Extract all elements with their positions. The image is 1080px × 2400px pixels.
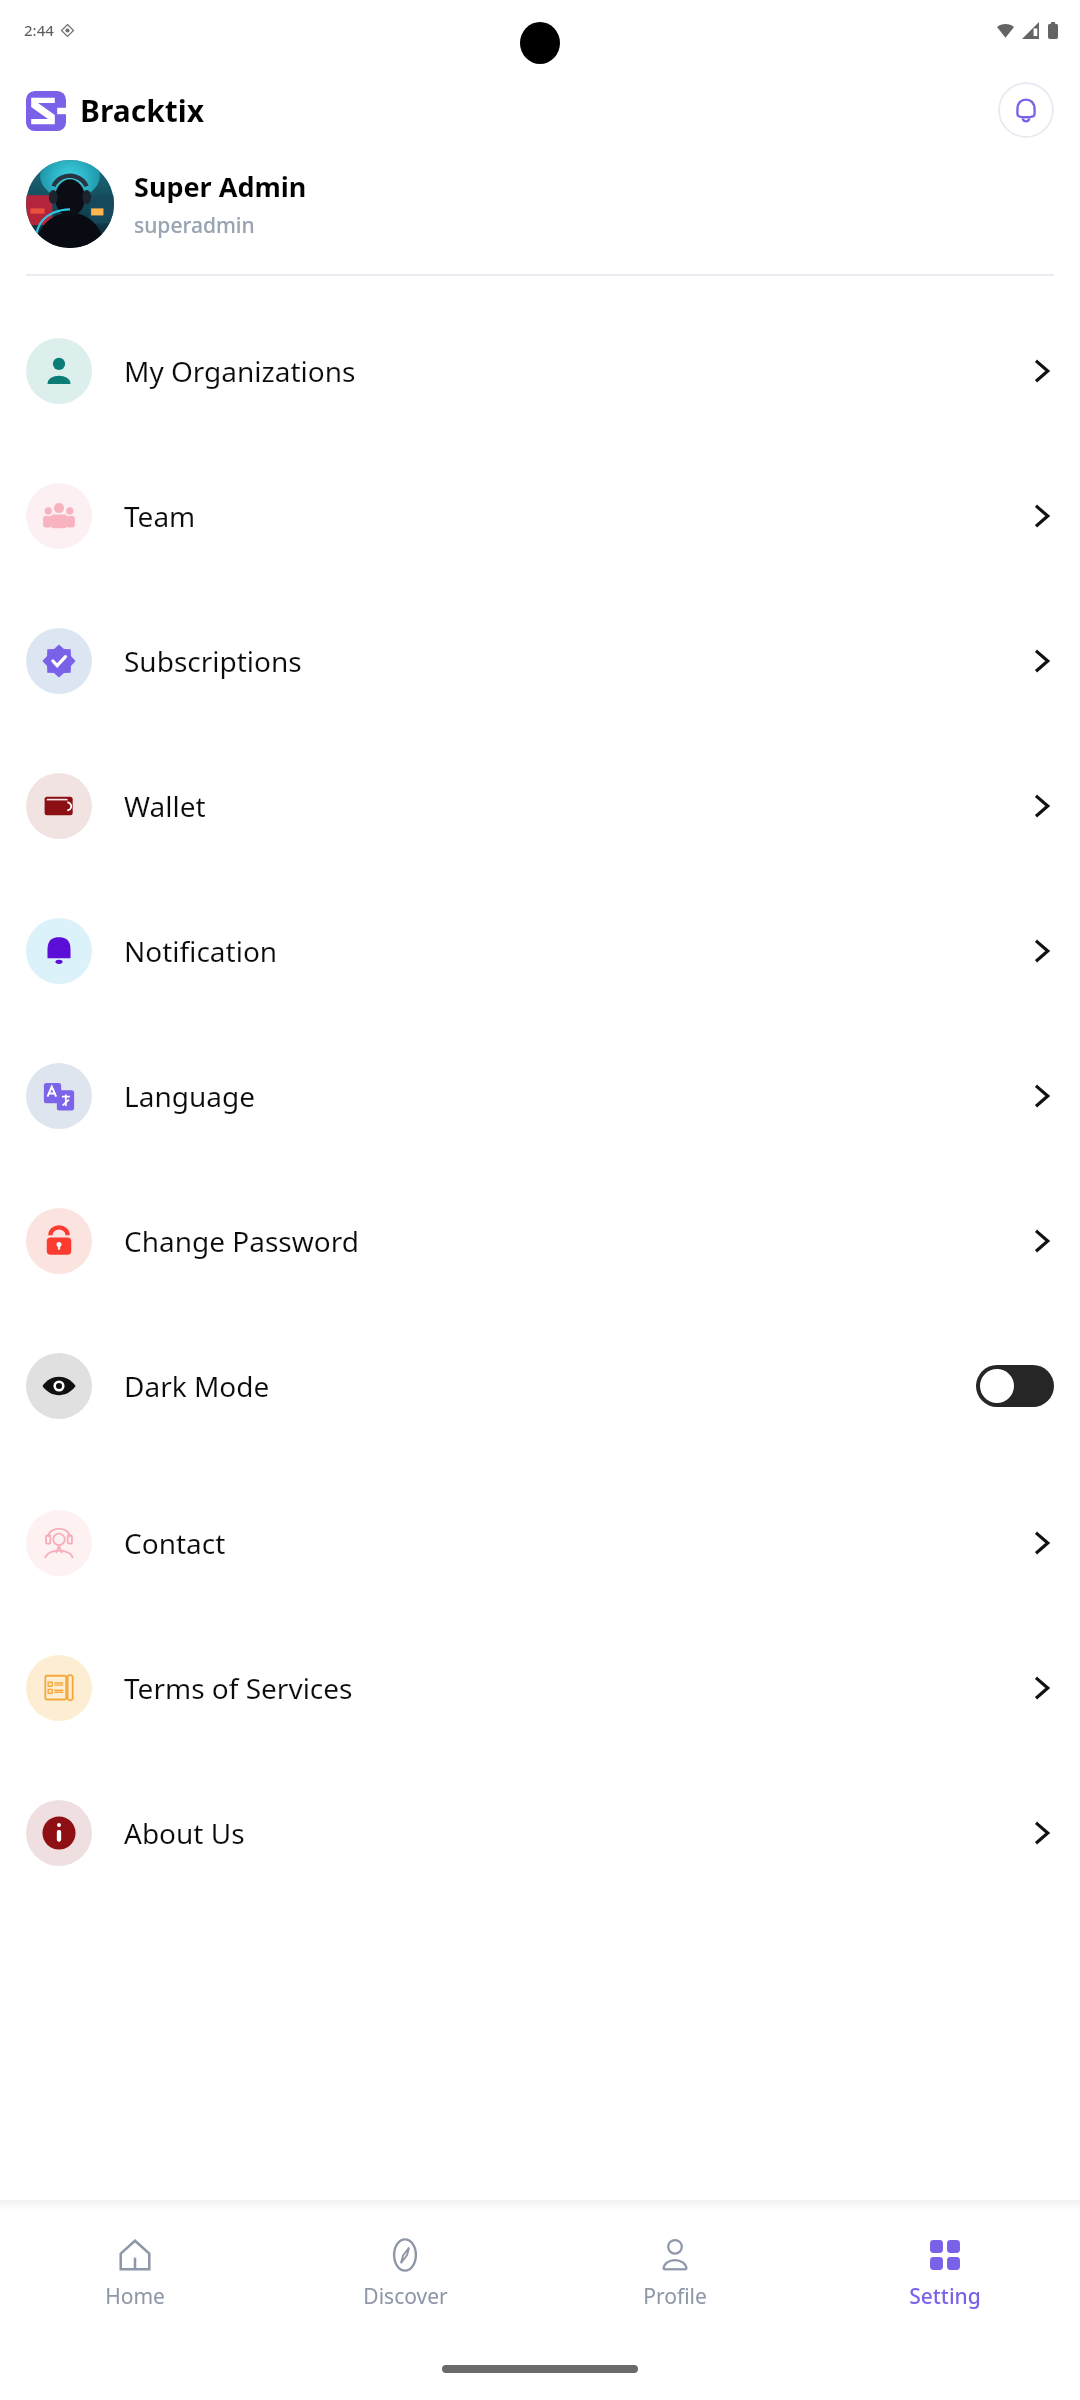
staticText: superadmin	[134, 211, 255, 240]
button[interactable]: Super Admin	[0, 160, 1080, 248]
staticText: Discover	[363, 2282, 448, 2311]
button[interactable]: My Organizations	[0, 298, 1080, 443]
staticText: Super Admin	[134, 168, 307, 205]
staticText: Team	[124, 497, 196, 535]
button[interactable]: Setting	[810, 2210, 1080, 2338]
staticText: Bracktix	[80, 90, 205, 131]
staticText: Wallet	[124, 787, 206, 825]
staticText: Language	[124, 1077, 255, 1115]
staticText: 2:44	[24, 20, 54, 40]
staticText: Dark Mode	[124, 1367, 270, 1405]
staticText: Notification	[124, 932, 278, 970]
button[interactable]: Dark Mode	[0, 1313, 1080, 1458]
button[interactable]: Contact	[0, 1470, 1080, 1615]
staticText: My Organizations	[124, 352, 356, 390]
button[interactable]: Profile	[540, 2210, 810, 2338]
button[interactable]: Home	[0, 2210, 270, 2338]
staticText: About Us	[124, 1814, 245, 1852]
staticText: Subscriptions	[124, 642, 302, 680]
staticText: Profile	[643, 2282, 707, 2311]
staticText: Contact	[124, 1524, 226, 1562]
button[interactable]: Bracktix	[26, 90, 205, 131]
button[interactable]: Wallet	[0, 733, 1080, 878]
staticText: Terms of Services	[124, 1669, 353, 1707]
button[interactable]: Subscriptions	[0, 588, 1080, 733]
button[interactable]: Notifications	[998, 82, 1054, 138]
button[interactable]: Team	[0, 443, 1080, 588]
button[interactable]: Change Password	[0, 1168, 1080, 1313]
staticText: Setting	[909, 2282, 981, 2311]
button[interactable]: Terms of Services	[0, 1615, 1080, 1760]
button[interactable]	[976, 1365, 1054, 1407]
button[interactable]: About Us	[0, 1760, 1080, 1905]
button[interactable]: Language	[0, 1023, 1080, 1168]
staticText: Change Password	[124, 1222, 359, 1260]
button[interactable]: Discover	[270, 2210, 540, 2338]
button[interactable]: Notification	[0, 878, 1080, 1023]
staticText: Home	[105, 2282, 165, 2311]
